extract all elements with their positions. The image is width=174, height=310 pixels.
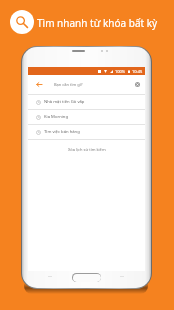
button[interactable]: Xóa lịch sử tìm kiếm [28,140,145,159]
button[interactable]: Tìm việc bán hàng [28,125,145,139]
staticText: 100% [115,69,126,74]
button[interactable]: Search [10,10,34,34]
staticText: Xóa lịch sử tìm kiếm [68,147,106,152]
button[interactable]: Kia Morning [28,110,145,124]
other: Clear [135,82,140,87]
staticText: Bạn cần tìm gì? [54,82,83,87]
staticText: Tìm nhanh từ khóa bất kỳ [37,16,158,30]
staticText: Nhà mặt tiền Gò vấp [44,99,85,105]
staticText: Tìm việc bán hàng [44,129,80,135]
button[interactable]: Home [72,273,101,282]
button[interactable]: Back [28,75,145,94]
other: Back [36,81,43,88]
staticText: Kia Morning [44,114,69,120]
button[interactable]: Nhà mặt tiền Gò vấp [28,95,145,109]
staticText: 10:45 [132,69,143,74]
